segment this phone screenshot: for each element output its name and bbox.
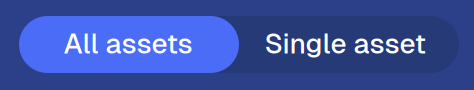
button[interactable]: Single asset bbox=[239, 16, 459, 73]
staticText: Single asset bbox=[264, 25, 425, 62]
button[interactable]: All assets bbox=[19, 16, 239, 73]
staticText: All assets bbox=[63, 25, 192, 62]
